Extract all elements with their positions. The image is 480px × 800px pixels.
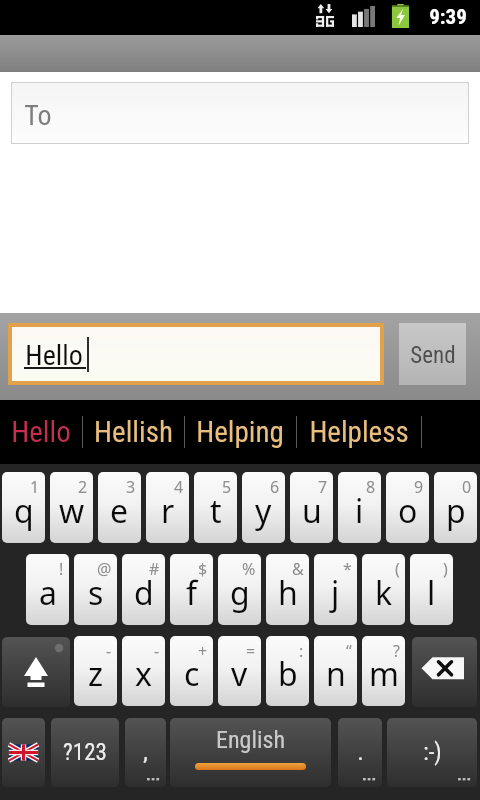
- button[interactable]: -: [74, 636, 117, 706]
- staticText: x: [135, 652, 152, 696]
- staticText: =: [246, 640, 256, 662]
- staticText: y: [255, 489, 272, 533]
- staticText: -: [106, 640, 112, 662]
- staticText: 9: [414, 476, 424, 498]
- staticText: w: [59, 489, 85, 533]
- button[interactable]: .: [338, 718, 382, 787]
- staticText: o: [398, 489, 418, 533]
- staticText: 0: [462, 476, 472, 498]
- staticText: b: [278, 652, 298, 696]
- button[interactable]: ): [410, 554, 453, 625]
- staticText: :: [299, 640, 304, 662]
- staticText: z: [88, 652, 104, 696]
- button[interactable]: 5: [194, 472, 237, 543]
- button[interactable]: Helpless: [296, 400, 421, 464]
- staticText: s: [88, 571, 104, 615]
- staticText: u: [302, 489, 322, 533]
- staticText: t: [210, 489, 222, 533]
- button[interactable]: ?123: [51, 718, 119, 787]
- staticText: Hellish: [94, 415, 173, 449]
- button[interactable]: +: [170, 636, 213, 706]
- staticText: 3: [126, 476, 136, 498]
- staticText: To: [24, 99, 52, 132]
- staticText: i: [355, 489, 364, 533]
- staticText: c: [184, 652, 200, 696]
- button[interactable]: 4: [146, 472, 189, 543]
- button[interactable]: &: [266, 554, 309, 625]
- staticText: Helpless: [309, 415, 409, 449]
- button[interactable]: $: [170, 554, 213, 625]
- staticText: 4: [174, 476, 184, 498]
- staticText: !: [59, 558, 64, 580]
- button[interactable]: %: [218, 554, 261, 625]
- staticText: -: [154, 640, 160, 662]
- staticText: %: [242, 558, 256, 580]
- staticText: a: [39, 571, 57, 615]
- staticText: p: [446, 489, 466, 533]
- button[interactable]: *: [314, 554, 357, 625]
- staticText: g: [230, 571, 250, 615]
- staticText: &: [292, 558, 304, 580]
- staticText: ?123: [63, 739, 107, 766]
- button[interactable]: !: [26, 554, 69, 625]
- staticText: 6: [270, 476, 280, 498]
- staticText: 7: [318, 476, 328, 498]
- staticText: 5: [222, 476, 232, 498]
- staticText: *: [343, 558, 352, 580]
- staticText: +: [198, 640, 208, 662]
- button[interactable]: Helping: [184, 400, 296, 464]
- button[interactable]: =: [218, 636, 261, 706]
- button[interactable]: Shift: [2, 637, 70, 707]
- button[interactable]: Hello: [12, 327, 380, 381]
- staticText: :-): [423, 739, 442, 766]
- button[interactable]: 6: [242, 472, 285, 543]
- button[interactable]: “: [314, 636, 357, 706]
- button[interactable]: (: [362, 554, 405, 625]
- button[interactable]: 9: [386, 472, 429, 543]
- button[interactable]: @: [74, 554, 117, 625]
- staticText: ?: [393, 640, 400, 662]
- button[interactable]: 7: [290, 472, 333, 543]
- button[interactable]: 0: [434, 472, 477, 543]
- staticText: ): [443, 558, 448, 580]
- button[interactable]: Change language: [2, 718, 45, 787]
- button[interactable]: :: [266, 636, 309, 706]
- staticText: q: [14, 489, 34, 533]
- staticText: m: [369, 652, 399, 696]
- button[interactable]: -: [122, 636, 165, 706]
- staticText: “: [346, 640, 352, 662]
- staticText: h: [278, 571, 298, 615]
- staticText: ,: [143, 739, 148, 766]
- staticText: English: [216, 726, 285, 754]
- button[interactable]: ,: [125, 718, 166, 787]
- staticText: d: [134, 571, 154, 615]
- staticText: $: [198, 558, 208, 580]
- staticText: 9:39: [429, 5, 467, 30]
- staticText: Helping: [196, 415, 284, 449]
- staticText: k: [375, 571, 393, 615]
- staticText: #: [149, 558, 160, 580]
- button[interactable]: 3: [98, 472, 141, 543]
- staticText: Send: [410, 342, 456, 369]
- staticText: Hello: [25, 339, 83, 372]
- button[interactable]: 1: [2, 472, 45, 543]
- button[interactable]: Hello: [0, 400, 82, 464]
- button[interactable]: To: [11, 82, 469, 144]
- staticText: l: [427, 571, 436, 615]
- button[interactable]: Send: [399, 323, 466, 385]
- staticText: e: [110, 489, 129, 533]
- button[interactable]: English: [170, 718, 331, 787]
- staticText: @: [97, 558, 112, 580]
- button[interactable]: :-): [387, 718, 477, 787]
- button[interactable]: ?: [362, 636, 405, 706]
- button[interactable]: 2: [50, 472, 93, 543]
- button[interactable]: #: [122, 554, 165, 625]
- staticText: 8: [366, 476, 376, 498]
- staticText: r: [161, 489, 175, 533]
- staticText: j: [331, 571, 340, 615]
- staticText: f: [186, 571, 198, 615]
- button[interactable]: Hellish: [82, 400, 184, 464]
- button[interactable]: 8: [338, 472, 381, 543]
- button[interactable]: Backspace: [412, 637, 477, 707]
- staticText: n: [326, 652, 346, 696]
